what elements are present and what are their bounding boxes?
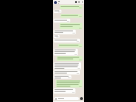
button[interactable]: Contact photo [54,1,57,4]
button[interactable]: Send [80,97,83,100]
button[interactable]: Video call [75,1,77,3]
button[interactable] [55,97,78,100]
